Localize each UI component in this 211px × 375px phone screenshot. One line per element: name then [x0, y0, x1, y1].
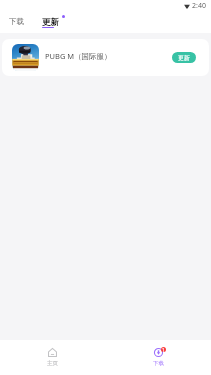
- button[interactable]: 主页: [0, 340, 105, 375]
- staticText: 下载: [9, 17, 24, 26]
- button[interactable]: 1: [105, 340, 211, 375]
- staticText: 2:40: [192, 1, 206, 11]
- button[interactable]: PUBG M（国际服）: [2, 39, 209, 76]
- staticText: 下载: [153, 360, 164, 367]
- staticText: 主页: [47, 360, 58, 367]
- button[interactable]: 下载: [9, 17, 24, 26]
- staticText: 更新: [42, 17, 59, 28]
- staticText: PUBG M（国际服）: [45, 51, 112, 61]
- staticText: 1: [162, 347, 165, 352]
- staticText: 更新: [178, 54, 190, 62]
- button[interactable]: 更新: [42, 17, 59, 29]
- button[interactable]: 更新: [172, 52, 196, 63]
